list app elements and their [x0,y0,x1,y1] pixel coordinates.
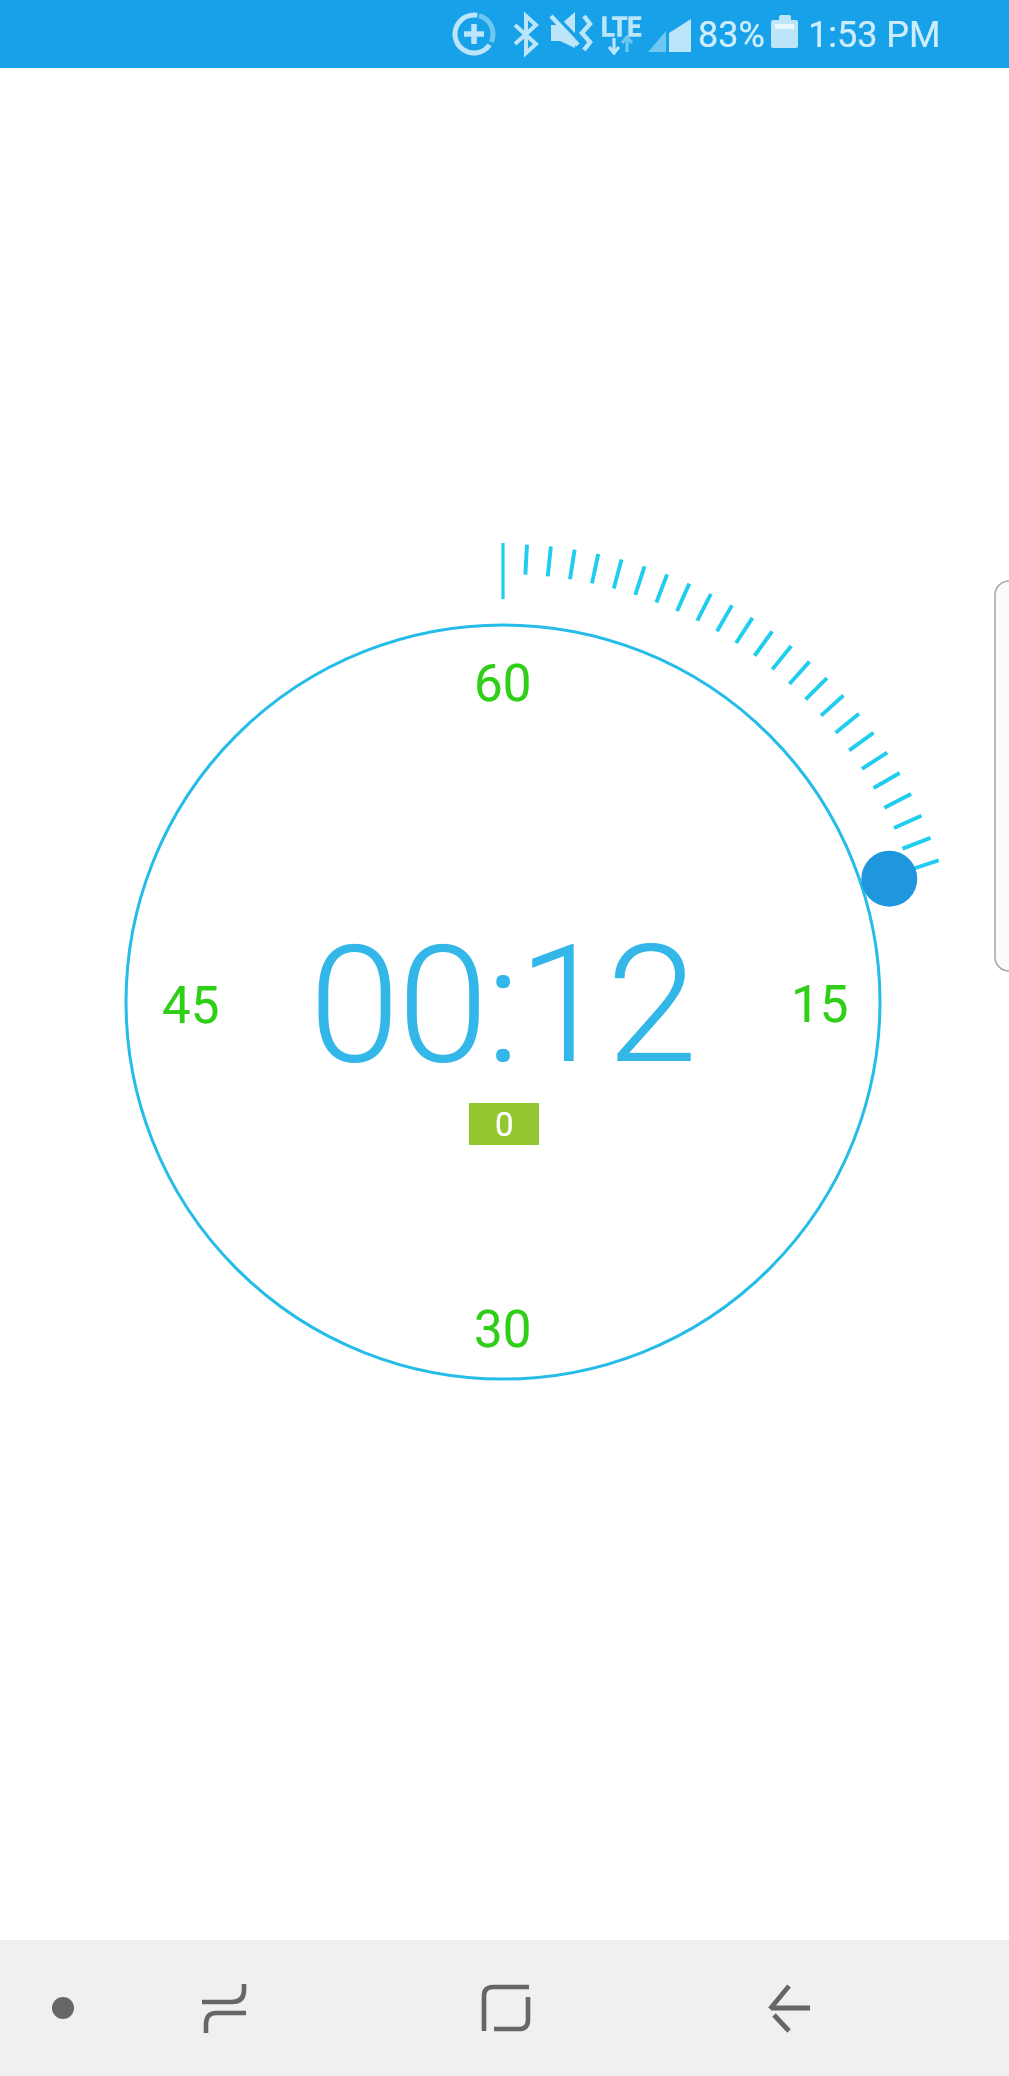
button[interactable] [178,1955,270,2060]
staticText: 45 [162,976,220,1036]
staticText: 83% [698,14,765,56]
staticText: LTE [601,13,642,42]
button[interactable] [993,581,1009,971]
staticText: 1:53 PM [808,14,941,56]
button[interactable] [460,1955,552,2060]
staticText: 00:12 [309,909,696,1101]
staticText: 15 [791,975,849,1035]
button[interactable] [848,837,928,917]
staticText: 60 [474,654,532,714]
staticText: 0 [495,1105,514,1144]
button[interactable] [20,1964,108,2054]
button[interactable] [744,1955,836,2060]
staticText: 30 [474,1300,532,1360]
